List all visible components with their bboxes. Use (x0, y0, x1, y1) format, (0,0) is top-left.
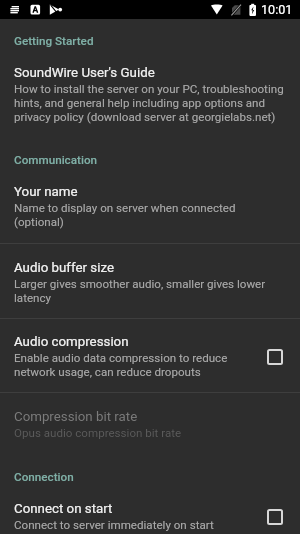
staticText: Opus audio compression bit rate (14, 426, 182, 440)
staticText: Audio buffer size (14, 260, 114, 275)
staticText: Name to display on server when connected… (14, 201, 286, 229)
staticText: Enable audio data compression to reduce … (14, 351, 252, 379)
staticText: How to install the server on your PC, tr… (14, 82, 286, 124)
button[interactable]: Connect on start (0, 484, 300, 534)
button[interactable]: SoundWire User's Guide (0, 48, 300, 137)
other: Audio compression (264, 346, 286, 368)
staticText: Audio compression (14, 334, 129, 349)
staticText: Connect on start (14, 501, 113, 516)
staticText: Compression bit rate (14, 409, 138, 424)
staticText: Getting Started (14, 34, 94, 48)
staticText: Your name (14, 184, 78, 199)
button[interactable]: Audio compression (0, 319, 300, 392)
other: Connect on start (264, 506, 286, 528)
button[interactable]: Compression bit rate (0, 393, 300, 454)
button[interactable]: Your name (0, 167, 300, 243)
button[interactable]: Audio buffer size (0, 244, 300, 318)
staticText: Larger gives smoother audio, smaller giv… (14, 277, 286, 305)
staticText: Communication (14, 153, 98, 167)
staticText: Connection (14, 470, 74, 484)
staticText: SoundWire User's Guide (14, 65, 155, 80)
staticText: Connect to server immediately on start (14, 518, 214, 532)
staticText: 10:01 (261, 3, 293, 17)
